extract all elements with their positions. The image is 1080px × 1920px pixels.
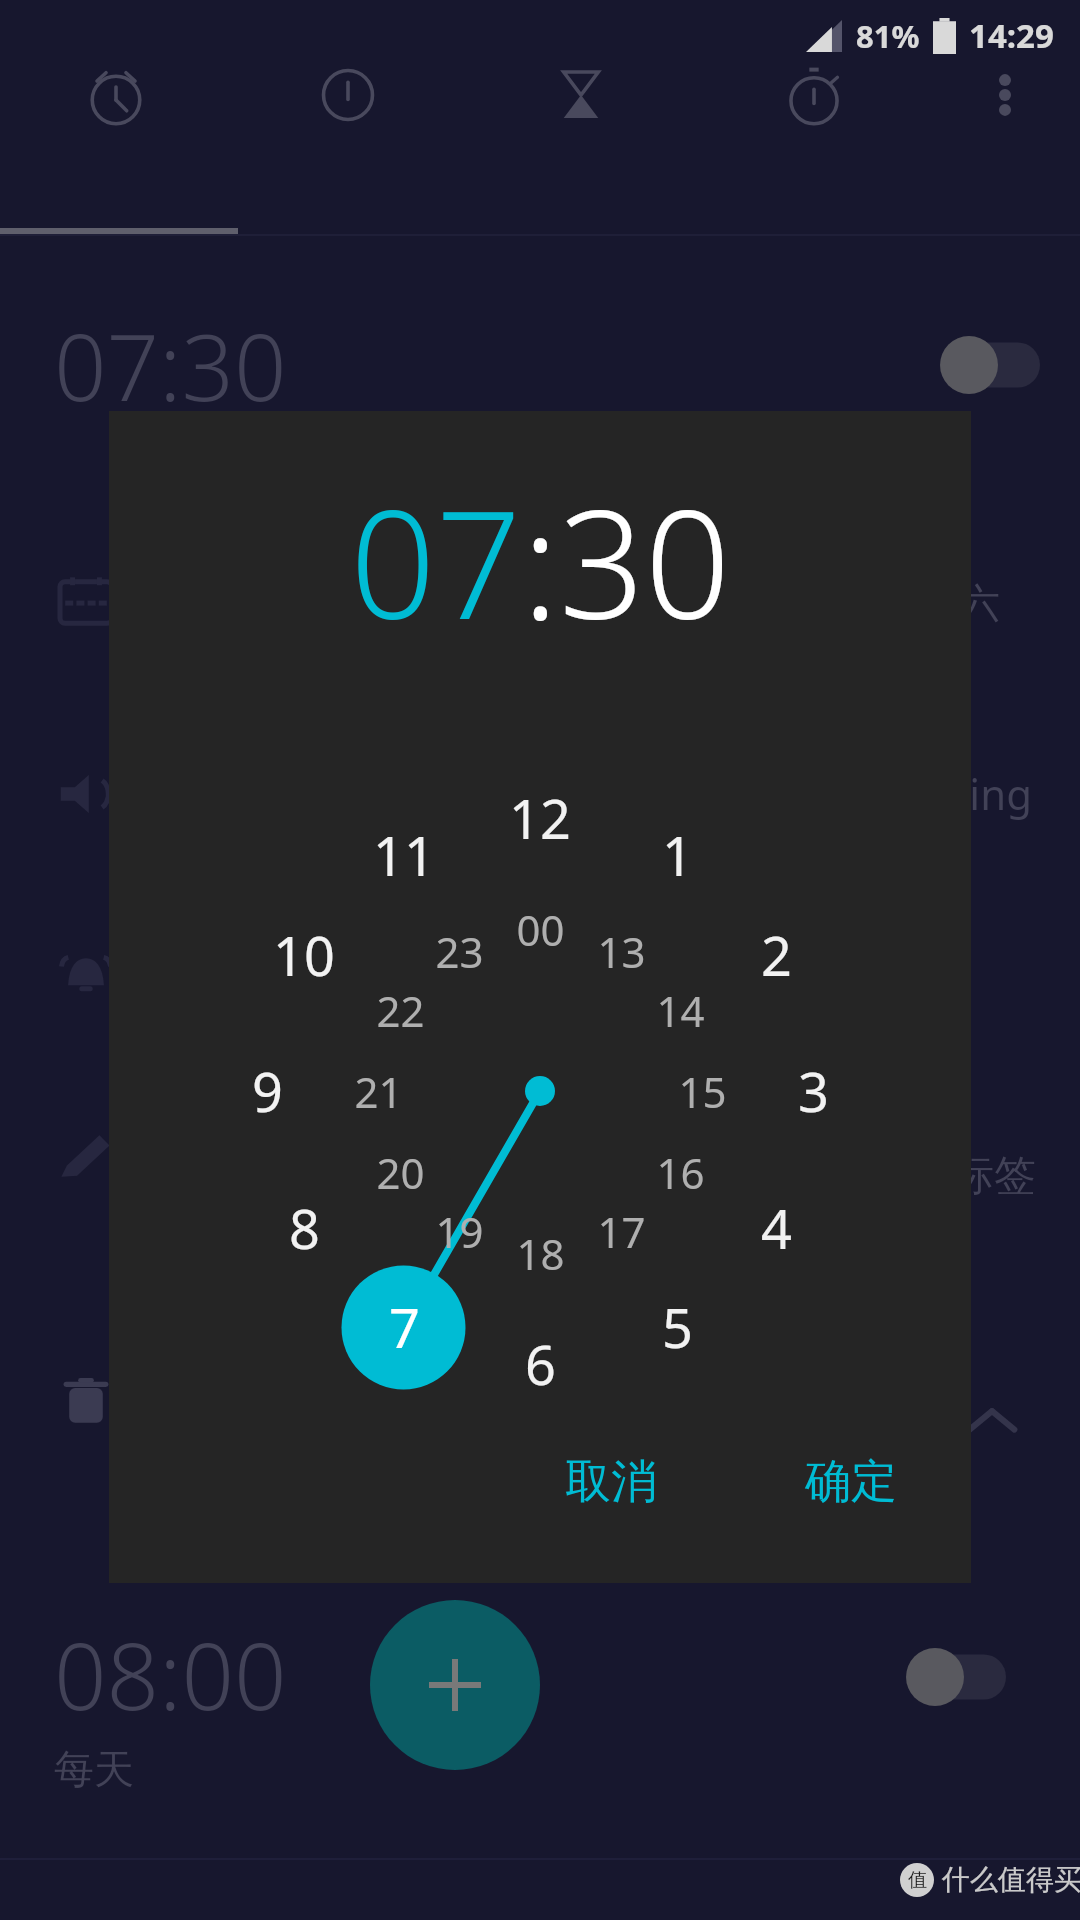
staticText: 11 [373,818,435,892]
button[interactable]: 3 [768,1046,858,1136]
button[interactable]: 1 [632,810,722,900]
staticText: 16 [656,1144,705,1201]
button[interactable]: Toggle alarm [906,1648,1006,1706]
staticText: 21 [354,1063,403,1120]
staticText: 标签 [952,1150,1036,1203]
staticText: 1 [662,818,693,892]
staticText: 30 [559,459,731,663]
staticText: 10 [273,918,335,992]
button[interactable]: 9 [222,1046,312,1136]
staticText: 81% [856,15,920,57]
button[interactable]: Timer [464,0,697,190]
button[interactable]: 11 [359,810,449,900]
button[interactable]: 00 [495,884,585,974]
staticText: 13 [597,923,646,980]
staticText: 07 [350,459,522,663]
button[interactable]: 8 [259,1183,349,1273]
staticText: 22 [376,982,425,1039]
staticText: 6 [525,1327,556,1401]
button[interactable]: 17 [576,1186,666,1276]
staticText: 12 [509,781,571,855]
button[interactable]: 15 [657,1046,747,1136]
button[interactable]: Toggle alarm [940,336,1040,394]
button[interactable]: 7 [359,1282,449,1372]
staticText: 4 [761,1191,792,1265]
staticText: 20 [376,1144,425,1201]
button[interactable]: Stopwatch [697,0,930,190]
button[interactable]: 18 [495,1208,585,1298]
button[interactable]: World clock [232,0,464,190]
staticText: 15 [678,1063,727,1120]
button[interactable]: Alarm [0,0,232,190]
staticText: 19 [435,1203,484,1260]
staticText: 值 [908,1868,927,1892]
staticText: 08:00 [54,1612,287,1737]
staticText: 5 [662,1290,693,1364]
staticText: 7 [389,1290,420,1364]
staticText: 9 [252,1054,283,1128]
button[interactable]: 12 [495,773,585,863]
button[interactable]: 2 [731,910,821,1000]
button[interactable]: 6 [495,1319,585,1409]
button[interactable]: 10 [259,910,349,1000]
button[interactable]: 5 [632,1282,722,1372]
button[interactable]: 30 [559,459,731,663]
button[interactable]: 22 [355,965,445,1055]
staticText: 07:30 [54,303,287,428]
staticText: 取消 [565,1453,657,1511]
staticText: 8 [289,1191,320,1265]
staticText: 23 [435,923,484,980]
staticText: 确定 [805,1453,897,1511]
staticText: 什么值得买 [942,1862,1080,1897]
staticText: 3 [798,1054,829,1128]
button[interactable]: 19 [414,1186,504,1276]
button[interactable]: 20 [355,1127,445,1217]
button[interactable]: 14 [635,965,725,1055]
staticText: 六 [960,578,1000,628]
button[interactable]: 16 [635,1127,725,1217]
staticText: : [522,459,559,663]
button[interactable]: More options [930,0,1080,190]
staticText: 18 [516,1225,565,1282]
staticText: 14:29 [969,13,1054,58]
staticText: 14 [656,982,705,1039]
button[interactable]: Add alarm [370,1600,540,1770]
staticText: ring [952,765,1032,822]
button[interactable]: 13 [576,906,666,996]
button[interactable]: 23 [414,906,504,996]
staticText: 00 [516,901,565,958]
button[interactable]: 21 [333,1046,423,1136]
staticText: 每天 [54,1744,134,1794]
staticText: 2 [761,918,792,992]
button[interactable]: 4 [731,1183,821,1273]
button[interactable]: 07 [350,459,522,663]
button[interactable]: 取消 [541,1441,681,1523]
button[interactable]: 确定 [781,1441,921,1523]
staticText: 17 [597,1203,646,1260]
